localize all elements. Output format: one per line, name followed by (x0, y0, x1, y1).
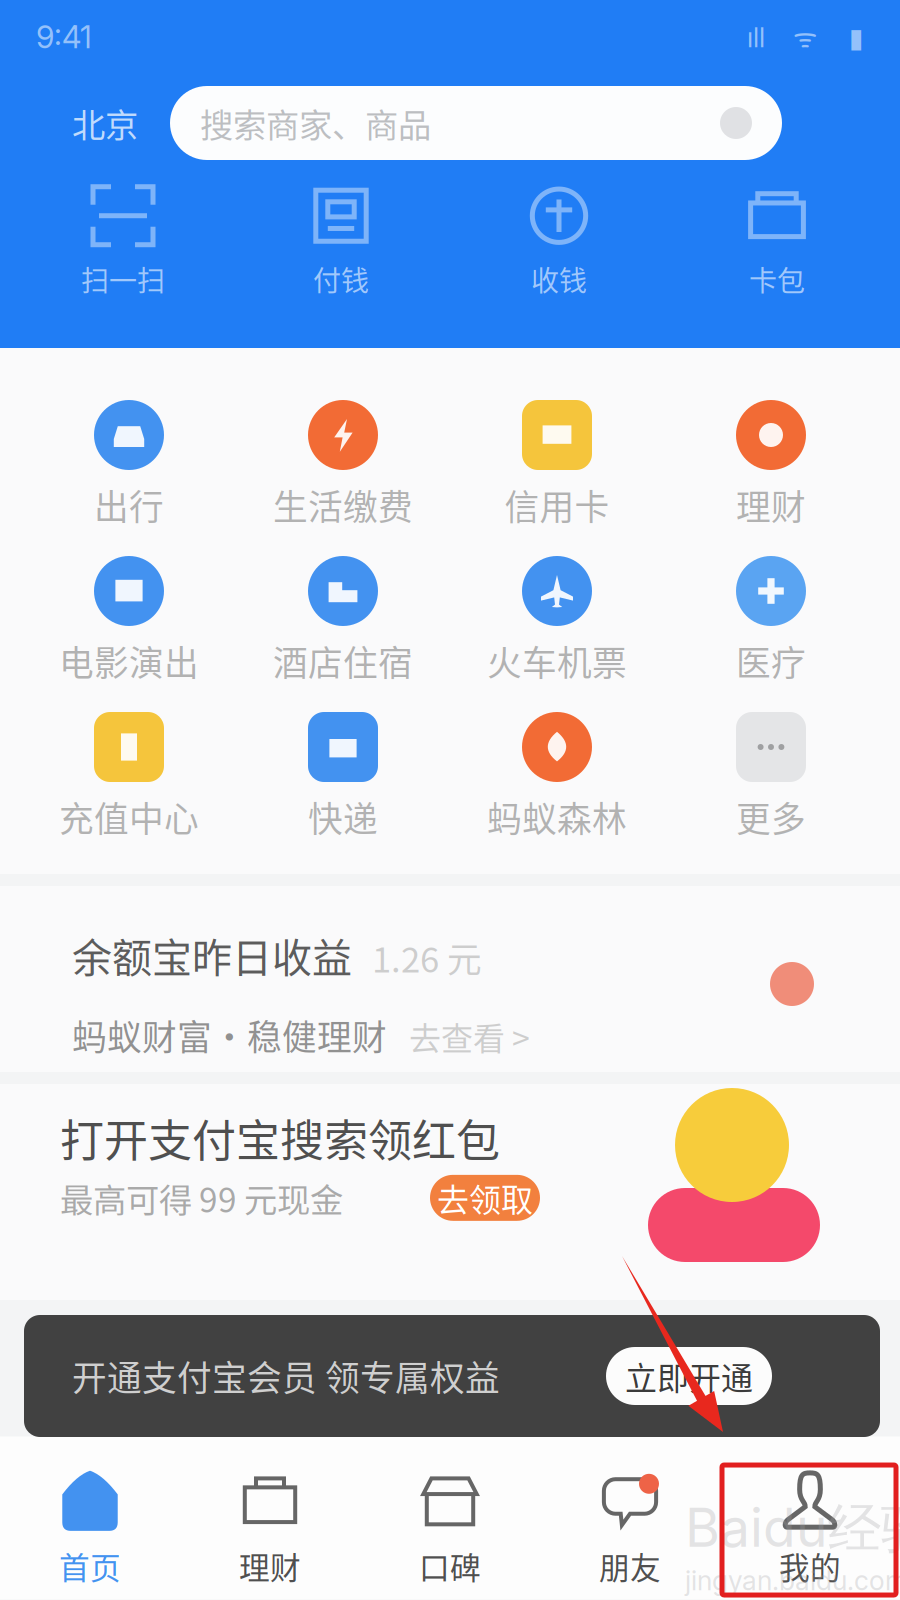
staticText: 充值中心 (59, 792, 199, 842)
button[interactable]: 打开支付宝搜索领红包 (0, 1084, 900, 1300)
button[interactable]: 电影演出 (22, 554, 236, 686)
staticText: 扫一扫 (81, 259, 165, 299)
button[interactable]: 理财 (664, 398, 878, 530)
staticText: 理财 (736, 480, 806, 530)
button[interactable]: 理财 (180, 1455, 360, 1600)
staticText: 蚂蚁财富·稳健理财 (72, 1010, 387, 1060)
staticText: Baidu经验 (685, 1495, 900, 1562)
staticText: 去查看 > (409, 1013, 530, 1059)
button[interactable]: 收钱 (450, 172, 668, 314)
button[interactable]: 搜索商家、商品 (170, 86, 782, 160)
staticText: 收钱 (531, 259, 587, 299)
staticText: 火车机票 (487, 636, 627, 686)
staticText: 电影演出 (59, 636, 199, 686)
staticText: 搜索商家、商品 (200, 99, 431, 147)
staticText: 更多 (736, 792, 806, 842)
button[interactable]: 首页 (0, 1455, 180, 1600)
staticText: 首页 (59, 1544, 121, 1588)
button[interactable]: 更多 (664, 710, 878, 842)
button[interactable]: 余额宝昨日收益 (0, 886, 900, 1072)
button[interactable]: 卡包 (668, 172, 886, 314)
staticText: 酒店住宿 (273, 636, 413, 686)
staticText: 1.26 元 (372, 932, 482, 982)
staticText: 口碑 (419, 1544, 481, 1588)
button[interactable]: 付钱 (232, 172, 450, 314)
staticText: 9:41 (36, 18, 92, 55)
staticText: 出行 (94, 480, 164, 530)
staticText: 卡包 (749, 259, 805, 299)
button[interactable]: 北京 (40, 86, 170, 160)
button[interactable]: 充值中心 (22, 710, 236, 842)
staticText: 蚂蚁森林 (487, 792, 627, 842)
staticText: 我的 (779, 1544, 841, 1588)
staticText: 付钱 (313, 259, 369, 299)
staticText: 打开支付宝搜索领红包 (60, 1106, 500, 1170)
button[interactable]: 我的 (720, 1455, 900, 1600)
staticText: 开通支付宝会员 领专属权益 (72, 1351, 500, 1401)
staticText: 北京 (72, 99, 138, 147)
button[interactable]: 出行 (22, 398, 236, 530)
staticText: ıll ᯤ ▮ (747, 19, 864, 55)
staticText: 理财 (239, 1544, 301, 1588)
button[interactable]: 医疗 (664, 554, 878, 686)
button[interactable]: 酒店住宿 (236, 554, 450, 686)
staticText: 快递 (308, 792, 378, 842)
staticText: 最高可得 99 元现金 (60, 1174, 343, 1222)
staticText: 余额宝昨日收益 (72, 926, 352, 984)
button[interactable]: 朋友 (540, 1455, 720, 1600)
staticText: 信用卡 (504, 480, 609, 530)
staticText: jingyan.baidu.com (685, 1564, 900, 1597)
button[interactable]: 生活缴费 (236, 398, 450, 530)
staticText: 去领取 (437, 1175, 533, 1221)
button[interactable]: 蚂蚁森林 (450, 710, 664, 842)
button[interactable]: 开通支付宝会员 领专属权益 (24, 1315, 880, 1437)
button[interactable]: 火车机票 (450, 554, 664, 686)
button[interactable]: 扫一扫 (14, 172, 232, 314)
button[interactable]: 口碑 (360, 1455, 540, 1600)
staticText: 朋友 (599, 1544, 661, 1588)
staticText: 立即开通 (625, 1353, 753, 1399)
staticText: 医疗 (736, 636, 806, 686)
button[interactable]: 信用卡 (450, 398, 664, 530)
button[interactable]: 快递 (236, 710, 450, 842)
staticText: 生活缴费 (273, 480, 413, 530)
